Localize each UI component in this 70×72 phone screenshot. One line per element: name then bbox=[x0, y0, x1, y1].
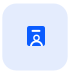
button[interactable]: Contacts bbox=[2, 3, 68, 70]
